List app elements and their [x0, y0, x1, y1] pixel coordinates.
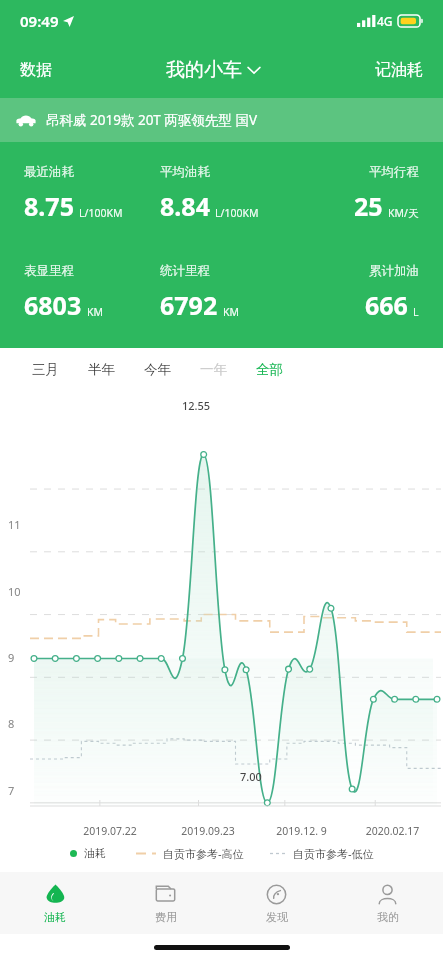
staticText: 自贡市参考-低位	[293, 846, 374, 861]
staticText: 2020.02.17	[346, 824, 439, 838]
button[interactable]: 三月	[22, 355, 69, 384]
button[interactable]: 我的	[332, 872, 443, 934]
staticText: 油耗	[44, 910, 66, 924]
staticText: 12.55	[182, 398, 211, 413]
staticText: 全部	[256, 361, 283, 378]
staticText: 7	[8, 783, 15, 798]
staticText: 666	[365, 288, 408, 322]
staticText: 2019.07.22	[61, 824, 159, 838]
staticText: 一年	[200, 361, 227, 378]
button[interactable]: 平均行程	[295, 164, 419, 223]
staticText: 昂科威 2019款 20T 两驱领先型 国V	[46, 111, 257, 129]
staticText: 三月	[32, 361, 59, 378]
staticText: 7.00	[240, 769, 262, 784]
button[interactable]: 今年	[134, 355, 181, 384]
staticText: 我的	[377, 910, 399, 924]
staticText: 我的小车	[166, 58, 242, 82]
staticText: 半年	[88, 361, 115, 378]
staticText: 10	[8, 584, 21, 599]
button[interactable]: 油耗	[66, 846, 110, 860]
staticText: 发现	[266, 910, 288, 924]
staticText: KM/天	[388, 206, 419, 220]
staticText: 4G	[377, 13, 393, 29]
staticText: 统计里程	[160, 263, 210, 279]
staticText: 9	[8, 650, 15, 665]
staticText: L/100KM	[215, 206, 259, 220]
button[interactable]: 平均油耗	[160, 164, 295, 223]
staticText: 记油耗	[375, 60, 423, 80]
staticText: L/100KM	[79, 206, 123, 220]
staticText: 8.84	[160, 189, 210, 223]
staticText: 25	[354, 189, 383, 223]
staticText: 6803	[24, 288, 82, 322]
staticText: 2019.12. 9	[257, 824, 346, 838]
button[interactable]: 自贡市参考-低位	[266, 846, 378, 861]
button[interactable]: 半年	[78, 355, 125, 384]
staticText: 2019.09.23	[159, 824, 257, 838]
button[interactable]: 发现	[221, 872, 332, 934]
staticText: 8.75	[24, 189, 74, 223]
button[interactable]: 累计加油	[295, 263, 419, 322]
staticText: 11	[8, 517, 21, 532]
button[interactable]: 统计里程	[160, 263, 295, 322]
button[interactable]: 费用	[110, 872, 221, 934]
button[interactable]: 一年	[190, 355, 237, 384]
staticText: 6792	[160, 288, 218, 322]
staticText: 09:49	[20, 11, 59, 31]
button[interactable]: 我的小车	[162, 52, 264, 88]
staticText: 费用	[155, 910, 177, 924]
staticText: 数据	[20, 60, 52, 80]
button[interactable]: 数据	[18, 54, 54, 86]
button[interactable]: 表显里程	[24, 263, 160, 322]
staticText: KM	[87, 305, 104, 319]
staticText: 表显里程	[24, 263, 74, 279]
staticText: 8	[8, 716, 15, 731]
button[interactable]: 昂科威 2019款 20T 两驱领先型 国V	[0, 98, 443, 142]
staticText: 自贡市参考-高位	[163, 846, 244, 861]
button[interactable]: 记油耗	[373, 54, 425, 86]
staticText: KM	[223, 305, 240, 319]
staticText: 平均油耗	[160, 164, 210, 180]
staticText: L	[413, 305, 419, 319]
staticText: 今年	[144, 361, 171, 378]
button[interactable]: 油耗	[0, 872, 110, 934]
button[interactable]: 自贡市参考-高位	[132, 846, 248, 861]
button[interactable]: 最近油耗	[24, 164, 160, 223]
staticText: 平均行程	[369, 164, 419, 180]
staticText: 油耗	[84, 846, 106, 860]
staticText: 最近油耗	[24, 164, 74, 180]
button[interactable]: 全部	[246, 355, 293, 384]
staticText: 累计加油	[369, 263, 419, 279]
